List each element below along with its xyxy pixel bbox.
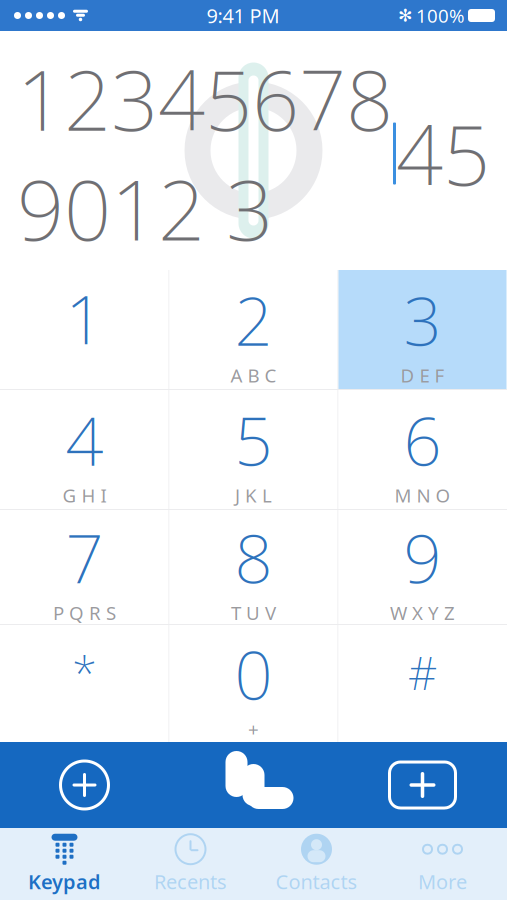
staticText: + [248,717,259,742]
button[interactable]: 1 [0,270,168,389]
button[interactable]: 2 [169,270,337,389]
staticText: G H I [62,483,106,508]
staticText: 1 [65,274,103,363]
button[interactable]: Recents [127,828,253,900]
staticText: W X Y Z [390,600,455,625]
staticText: M N O [394,483,450,508]
staticText: 6 [403,396,441,484]
staticText: Contacts [275,868,357,895]
button[interactable]: Keypad [1,828,127,900]
button[interactable]: Call [169,742,338,828]
button[interactable]: 3 [338,270,506,389]
staticText: P Q R S [53,600,116,625]
staticText: ✻ [398,6,413,25]
staticText: 2 [234,276,272,364]
button[interactable]: 9 [338,510,506,624]
staticText: T U V [231,600,276,625]
button[interactable]: Delete [338,742,507,828]
staticText: 0 [234,630,272,718]
staticText: 123456789012 3 [17,44,393,263]
button[interactable]: * [0,625,168,742]
button[interactable]: More [379,828,505,900]
staticText: Recents [154,868,227,895]
staticText: # [408,642,437,703]
staticText: 7 [65,513,103,602]
button[interactable]: Add number [0,742,169,828]
button[interactable]: 8 [169,510,337,624]
staticText: 100% [416,3,465,28]
staticText: 45 [396,99,490,208]
staticText: More [418,868,467,895]
staticText: 5 [234,396,272,484]
staticText: D E F [400,363,444,388]
staticText: 4 [65,396,103,484]
button[interactable]: 5 [169,390,337,509]
staticText: J K L [235,483,272,508]
staticText: 9:41 PM [206,2,279,29]
button[interactable]: 7 [0,510,168,624]
staticText: 9 [403,513,441,602]
button[interactable]: 4 [0,390,168,509]
button[interactable]: 6 [338,390,506,509]
button[interactable]: 0 [169,625,337,742]
button[interactable]: # [338,625,506,742]
staticText: A B C [230,363,276,388]
staticText: * [72,642,97,703]
staticText: 3 [403,276,441,364]
button[interactable]: Contacts [253,828,379,900]
staticText: 8 [234,513,272,602]
staticText: Keypad [28,868,101,895]
